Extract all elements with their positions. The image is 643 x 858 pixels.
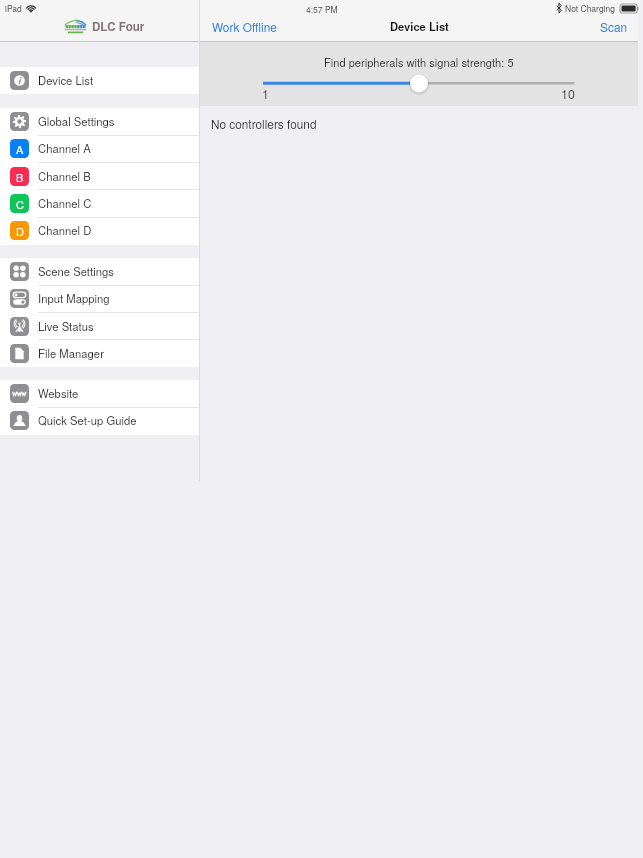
staticText: Scene Settings (38, 263, 114, 279)
button[interactable]: Scene Settings (0, 258, 200, 285)
staticText: Device List (390, 18, 449, 34)
button[interactable]: B (0, 163, 200, 190)
staticText: File Manager (38, 345, 104, 361)
staticText: Device List (38, 72, 94, 88)
staticText: iPad (5, 2, 22, 14)
button[interactable]: Live Status (0, 313, 200, 340)
button[interactable]: Device List (0, 67, 200, 94)
button[interactable]: File Manager (0, 340, 200, 367)
staticText: Global Settings (38, 113, 115, 129)
button[interactable]: C (0, 190, 200, 217)
button[interactable]: Input Mapping (0, 285, 200, 312)
staticText: D (16, 223, 24, 239)
staticText: 1 (262, 85, 269, 103)
staticText: Live Status (38, 318, 94, 334)
staticText: Work Offline (212, 18, 277, 35)
staticText: Channel C (38, 195, 92, 211)
button[interactable]: Global Settings (0, 108, 200, 135)
staticText: A (16, 141, 24, 157)
staticText: Channel A (38, 140, 91, 156)
staticText: Input Mapping (38, 290, 110, 306)
staticText: Quick Set-up Guide (38, 412, 137, 428)
staticText: Not Charging (565, 2, 615, 14)
staticText: Channel B (38, 168, 91, 184)
staticText: Find peripherals with signal strength: 5 (324, 54, 514, 70)
button[interactable]: Scan (588, 14, 638, 39)
button[interactable]: Website (0, 380, 200, 407)
staticText: DLC Four (92, 18, 145, 35)
staticText: Channel D (38, 222, 92, 238)
staticText: Website (38, 385, 79, 401)
staticText: B (16, 169, 24, 185)
button[interactable]: A (0, 135, 200, 162)
button[interactable]: Work Offline (200, 14, 289, 39)
staticText: C (16, 196, 24, 212)
staticText: No controllers found (211, 115, 317, 132)
button[interactable]: Quick Set-up Guide (0, 407, 200, 434)
staticText: Scan (600, 18, 628, 35)
staticText: 10 (561, 85, 575, 103)
staticText: 4:57 PM (306, 3, 338, 15)
button[interactable]: D (0, 217, 200, 244)
